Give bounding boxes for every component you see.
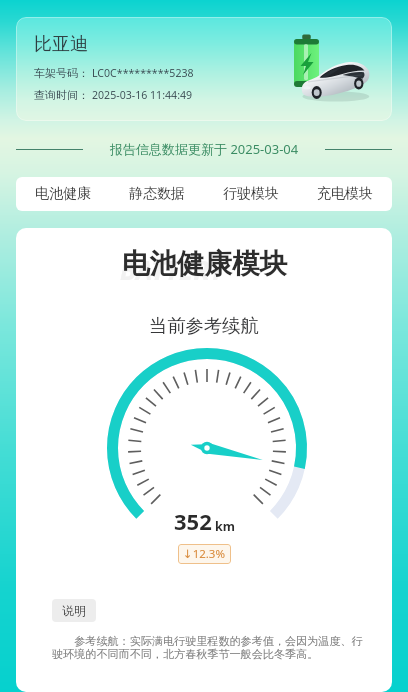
staticText: LC0C*********5238: [92, 66, 194, 80]
button[interactable]: 电池健康: [16, 177, 110, 211]
button[interactable]: 充电模块: [298, 177, 392, 211]
staticText: BATTERY: [120, 252, 224, 287]
staticText: 2025-03-16 11:44:49: [92, 88, 193, 102]
staticText: km: [215, 518, 235, 535]
staticText: 静态数据: [129, 185, 185, 203]
staticText: 行驶模块: [223, 185, 279, 203]
staticText: 车架号码：: [34, 66, 89, 80]
button[interactable]: 静态数据: [110, 177, 204, 211]
staticText: 参考续航：实际满电行驶里程数的参考值，会因为温度、行驶环境的不同而不同，北方春秋…: [52, 633, 370, 662]
staticText: ↓12.3%: [183, 546, 226, 562]
staticText: 充电模块: [317, 185, 373, 203]
button[interactable]: 行驶模块: [204, 177, 298, 211]
staticText: 352: [174, 506, 212, 536]
staticText: 说明: [62, 603, 86, 618]
staticText: 电池健康: [35, 185, 91, 203]
staticText: 电池健康模块: [122, 247, 287, 282]
staticText: 查询时间：: [34, 88, 89, 102]
staticText: 报告信息数据更新于 2025-03-04: [110, 140, 299, 158]
staticText: 比亚迪: [34, 33, 88, 56]
staticText: 当前参考续航: [149, 314, 259, 337]
